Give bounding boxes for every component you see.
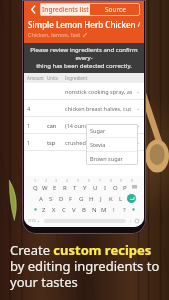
button[interactable]: Y — [80, 183, 90, 192]
staticText: A — [39, 195, 43, 203]
staticText: Stevia — [90, 141, 106, 148]
staticText: 4 — [66, 178, 69, 183]
staticText: ?123 — [28, 218, 36, 223]
staticText: , — [38, 217, 40, 224]
staticText: Q — [33, 184, 38, 192]
staticText: Z — [42, 206, 46, 214]
button[interactable]: P — [120, 183, 130, 192]
staticText: 6 — [88, 178, 91, 183]
button[interactable]: V — [69, 205, 79, 214]
button[interactable]: 1 — [24, 134, 144, 150]
button[interactable]: C — [59, 205, 69, 214]
staticText: X — [52, 206, 56, 214]
staticText: C — [62, 206, 66, 214]
button[interactable]: Emoji — [132, 219, 142, 223]
staticText: Ingredients list — [42, 5, 89, 14]
button[interactable]: U — [90, 183, 100, 192]
button[interactable]: 1 — [24, 117, 144, 133]
staticText: Y — [83, 184, 87, 192]
button[interactable]: K — [106, 194, 116, 203]
staticText: crushed sugar — [65, 139, 136, 146]
button[interactable]: H — [86, 194, 96, 203]
button[interactable]: Back — [28, 4, 39, 15]
button[interactable]: S — [46, 194, 56, 203]
button[interactable]: Ingredients list — [40, 3, 90, 16]
button[interactable]: R — [60, 183, 70, 192]
staticText: D — [59, 195, 64, 203]
staticText: 8 — [110, 178, 113, 183]
staticText: 2 — [45, 178, 48, 183]
staticText: 1 — [27, 122, 47, 129]
button[interactable]: L — [116, 194, 126, 203]
staticText: 1 — [34, 178, 37, 183]
button[interactable]: E — [50, 183, 60, 192]
staticText: L — [119, 195, 123, 203]
staticText: ? — [123, 206, 126, 214]
staticText: O — [113, 184, 118, 192]
button[interactable]: D — [56, 194, 66, 203]
button[interactable]: Backspace — [130, 185, 139, 190]
staticText: Amount — [27, 75, 47, 81]
button[interactable]: F — [66, 194, 76, 203]
staticText: N — [92, 206, 97, 214]
staticText: T — [73, 184, 77, 192]
staticText: B — [82, 206, 86, 214]
button[interactable]: Shift — [31, 208, 39, 211]
staticText: Sugar — [90, 127, 106, 134]
button[interactable]: W — [40, 183, 50, 192]
staticText: Units — [47, 75, 65, 81]
staticText: ⌄ — [136, 139, 141, 145]
button[interactable]: Shift — [129, 208, 137, 211]
staticText: V — [72, 206, 76, 214]
button[interactable]: N — [89, 205, 99, 214]
staticText: M — [101, 206, 107, 214]
staticText: 9 — [120, 178, 123, 183]
staticText: J — [100, 195, 102, 203]
button[interactable]: I — [100, 183, 110, 192]
staticText: Ingredient — [65, 75, 88, 81]
staticText: E — [53, 184, 57, 192]
staticText: chicken breast halves, cut into 1-inch s… — [65, 105, 136, 112]
staticText: 4 — [27, 105, 47, 112]
button[interactable]: X — [49, 205, 59, 214]
button[interactable]: Source — [90, 3, 140, 16]
staticText: S — [49, 195, 53, 203]
staticText: nonstick cooking spray, as needed — [65, 88, 136, 95]
staticText: K — [109, 195, 113, 203]
staticText: ⌄ — [136, 105, 141, 111]
staticText: 5 — [77, 178, 80, 183]
button[interactable]: 4 — [24, 100, 144, 116]
button[interactable]: J — [96, 194, 106, 203]
staticText: I — [104, 184, 107, 192]
button[interactable]: A — [36, 194, 46, 203]
staticText: 1 — [27, 139, 47, 146]
staticText: H — [89, 195, 94, 203]
button[interactable]: ?123 — [26, 218, 38, 223]
button[interactable]: ? — [119, 205, 129, 214]
button[interactable]: O — [110, 183, 120, 192]
button[interactable]: nonstick cooking spray, as needed — [24, 83, 144, 99]
staticText: (14 ounce) can diced tomatoes — [65, 122, 136, 129]
button[interactable]: T — [70, 183, 80, 192]
button[interactable]: Simple Lemon Herb Chicken — [28, 19, 140, 30]
button[interactable]: Enter — [127, 194, 136, 203]
button[interactable]: Brown sugar — [86, 152, 138, 165]
button[interactable]: Q — [30, 183, 40, 192]
staticText: 0 — [131, 178, 134, 183]
staticText: Source — [105, 5, 126, 14]
staticText: Create custom recipes by editing ingredi… — [10, 241, 169, 290]
staticText: can — [47, 122, 65, 129]
button[interactable]: G — [76, 194, 86, 203]
button[interactable]: ! — [109, 205, 119, 214]
button[interactable]: Stevia — [86, 138, 138, 151]
button[interactable]: M — [99, 205, 109, 214]
staticText: P — [123, 184, 127, 192]
staticText: Simple Lemon Herb Chicken — [28, 19, 136, 30]
button[interactable]: Sugar — [86, 124, 138, 137]
staticText: 7 — [99, 178, 102, 183]
button[interactable]: Z — [39, 205, 49, 214]
button[interactable]: B — [79, 205, 89, 214]
